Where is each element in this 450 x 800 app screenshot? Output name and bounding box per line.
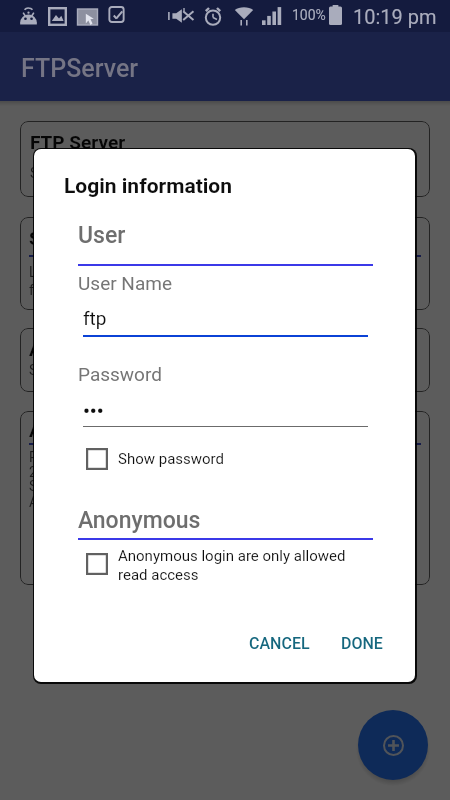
staticText: Anonymous login are only allowed read ac… <box>118 547 350 584</box>
staticText: ••• <box>83 400 104 422</box>
button[interactable]: Show password <box>86 444 276 474</box>
staticText: 10:19 pm <box>353 5 437 28</box>
staticText: Password <box>78 363 162 385</box>
staticText: Anonymous <box>78 507 201 534</box>
button[interactable]: FTP Server <box>20 121 430 197</box>
staticText: Server <box>29 227 85 249</box>
staticText: Show password <box>118 450 225 468</box>
staticText: DONE <box>341 634 383 653</box>
staticText: Rate the app <box>29 449 108 465</box>
staticText: ftp <box>83 307 107 329</box>
staticText: About <box>29 419 81 441</box>
button[interactable]: Add server <box>358 710 428 780</box>
staticText: Storage <box>29 362 78 378</box>
staticText: FTPServer <box>21 54 139 83</box>
staticText: User <box>78 222 126 249</box>
staticText: Login information <box>29 264 140 280</box>
staticText: CANCEL <box>249 634 310 653</box>
staticText: Alternatives <box>29 494 103 510</box>
button[interactable]: DONE <box>333 627 391 659</box>
staticText: Source code <box>29 478 107 494</box>
staticText: Access <box>29 338 92 360</box>
staticText: 2.1.3 <box>29 464 60 480</box>
staticText: User Name <box>78 272 172 294</box>
staticText: ftp <box>29 282 47 298</box>
staticText: FTP Server <box>30 131 126 153</box>
button[interactable]: About <box>20 411 430 585</box>
button[interactable]: Access <box>20 328 430 392</box>
staticText: Stopped <box>30 165 82 181</box>
staticText: Login information <box>64 174 232 199</box>
staticText: 100% <box>292 7 326 23</box>
button[interactable]: Anonymous login are only allowed read ac… <box>86 547 386 591</box>
button[interactable]: Server <box>20 217 430 310</box>
button[interactable]: CANCEL <box>241 627 317 659</box>
